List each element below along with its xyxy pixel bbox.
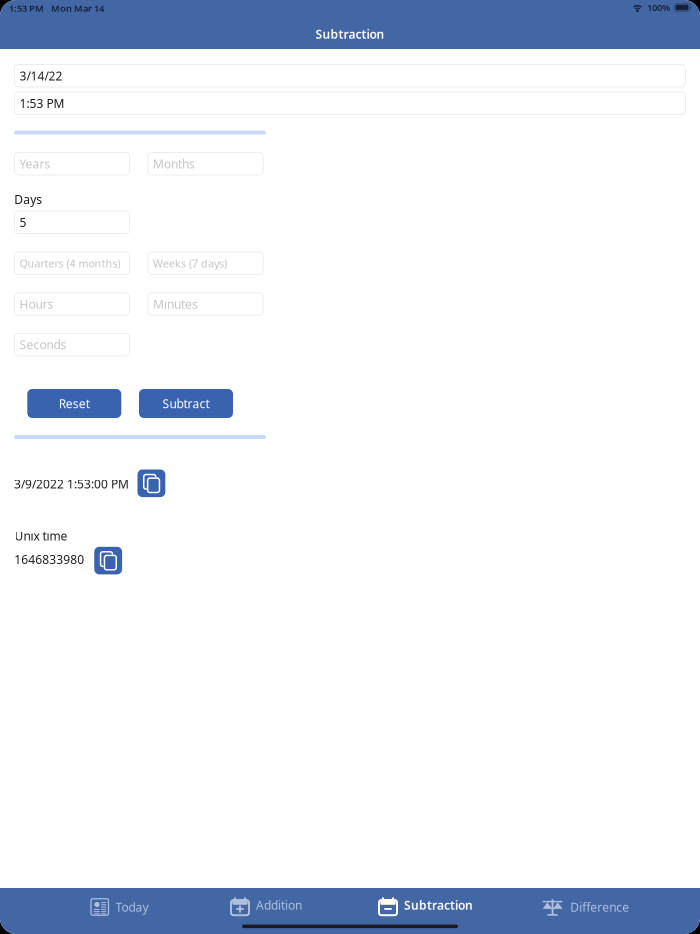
staticText: Reset — [59, 395, 90, 411]
button[interactable]: Copy — [137, 469, 165, 497]
button[interactable]: Months — [148, 152, 263, 175]
staticText: 1:53 PM — [19, 95, 64, 111]
button[interactable]: Copy — [94, 547, 122, 574]
staticText: Subtraction — [315, 26, 384, 42]
button[interactable]: Weeks (7 days) — [148, 252, 263, 274]
staticText: 3/14/22 — [19, 68, 62, 84]
staticText: Days — [14, 191, 42, 207]
staticText: 5 — [19, 214, 26, 230]
button[interactable]: Seconds — [14, 333, 130, 356]
staticText: Mon Mar 14 — [51, 2, 104, 14]
staticText: Today — [115, 899, 148, 915]
button[interactable]: Reset — [27, 389, 121, 418]
button[interactable]: Subtract — [139, 389, 233, 418]
staticText: 1:53 PM — [9, 2, 44, 14]
button[interactable]: Minutes — [148, 293, 263, 315]
staticText: 100% — [647, 1, 670, 14]
button[interactable]: 1:53 PM — [14, 92, 685, 114]
button[interactable]: Today — [87, 889, 152, 925]
staticText: Hours — [19, 296, 53, 312]
staticText: Subtraction — [404, 897, 473, 913]
staticText: Quarters (4 months) — [19, 256, 120, 270]
staticText: Months — [153, 156, 195, 172]
button[interactable]: 3/14/22 — [14, 64, 685, 87]
button[interactable]: Subtraction — [375, 887, 477, 923]
button[interactable]: Hours — [14, 293, 130, 315]
staticText: 1646833980 — [14, 551, 84, 567]
staticText: Subtract — [162, 395, 209, 411]
staticText: Weeks (7 days) — [153, 256, 227, 270]
staticText: Minutes — [153, 296, 198, 312]
staticText: Difference — [570, 899, 629, 915]
staticText: Seconds — [19, 337, 66, 353]
button[interactable]: 5 — [14, 211, 130, 233]
button[interactable]: Difference — [538, 889, 633, 925]
button[interactable]: Addition — [227, 887, 306, 923]
staticText: Years — [19, 156, 50, 172]
button[interactable]: Years — [14, 152, 130, 175]
staticText: 3/9/2022 1:53:00 PM — [14, 476, 129, 492]
button[interactable]: Quarters (4 months) — [14, 252, 130, 274]
staticText: Unix time — [14, 528, 67, 544]
staticText: Addition — [256, 897, 302, 913]
